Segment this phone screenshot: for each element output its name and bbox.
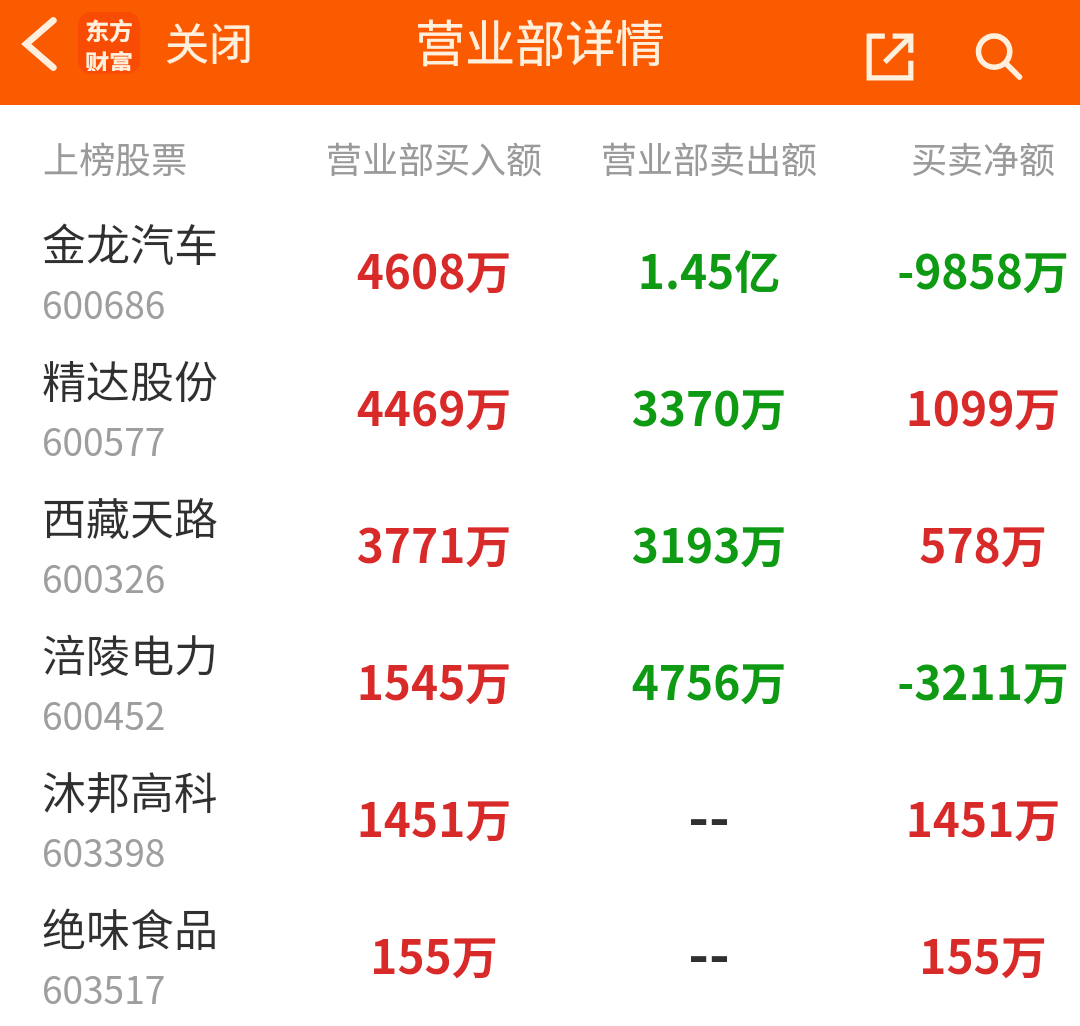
staticText: -- (559, 910, 859, 991)
button[interactable]: 金龙汽车 (0, 193, 1080, 330)
button[interactable]: 东方财富 (78, 12, 140, 74)
staticText: 西藏天路 (42, 484, 218, 548)
staticText: -3211万 (833, 647, 1080, 714)
staticText: -9858万 (833, 236, 1080, 303)
staticText: 4608万 (284, 236, 584, 303)
staticText: 营业部卖出额 (559, 131, 859, 183)
staticText: 155万 (833, 921, 1080, 988)
button[interactable]: 关闭 (165, 9, 253, 73)
staticText: 涪陵电力 (42, 621, 218, 685)
staticText: 3193万 (559, 510, 859, 577)
staticText: 买卖净额 (833, 131, 1080, 183)
staticText: 精达股份 (42, 347, 218, 411)
staticText: 3771万 (284, 510, 584, 577)
staticText: 1545万 (284, 647, 584, 714)
staticText: 财富 (85, 44, 133, 71)
staticText: 营业部买入额 (284, 131, 584, 183)
staticText: 绝味食品 (42, 895, 218, 959)
staticText: 600577 (42, 413, 166, 467)
staticText: 1.45亿 (559, 236, 859, 303)
staticText: -- (559, 773, 859, 854)
staticText: 1099万 (833, 373, 1080, 440)
staticText: 603398 (42, 824, 166, 878)
staticText: 4756万 (559, 647, 859, 714)
staticText: 沐邦高科 (42, 758, 218, 822)
staticText: 上榜股票 (43, 131, 188, 183)
staticText: 营业部详情 (415, 4, 665, 76)
button[interactable]: 沐邦高科 (0, 741, 1080, 878)
staticText: 600452 (42, 687, 166, 741)
staticText: 3370万 (559, 373, 859, 440)
button[interactable]: Back (6, 10, 74, 78)
staticText: 关闭 (165, 9, 253, 73)
staticText: 东方 (85, 12, 133, 47)
staticText: 578万 (833, 510, 1080, 577)
staticText: 600326 (42, 550, 166, 604)
staticText: 600686 (42, 276, 166, 330)
button[interactable]: 精达股份 (0, 330, 1080, 467)
staticText: 4469万 (284, 373, 584, 440)
staticText: 金龙汽车 (42, 210, 218, 274)
staticText: 1451万 (833, 784, 1080, 851)
button[interactable]: Search (957, 15, 1041, 99)
button[interactable]: 涪陵电力 (0, 604, 1080, 741)
button[interactable]: 西藏天路 (0, 467, 1080, 604)
button[interactable]: 绝味食品 (0, 878, 1080, 1015)
staticText: 1451万 (284, 784, 584, 851)
button[interactable]: Share (848, 15, 932, 99)
staticText: 155万 (284, 921, 584, 988)
staticText: 603517 (42, 961, 166, 1015)
